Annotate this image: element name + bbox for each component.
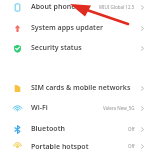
staticText: Bluetooth [31, 124, 128, 134]
button[interactable]: System apps updater [0, 20, 150, 36]
staticText: Security status [31, 43, 139, 53]
staticText: Off [128, 126, 135, 132]
button[interactable]: Bluetooth [0, 121, 150, 137]
staticText: About phone [31, 2, 99, 12]
button[interactable]: Wi-Fi [0, 100, 150, 116]
staticText: Off [128, 143, 135, 149]
staticText: SIM cards & mobile networks [31, 83, 139, 93]
button[interactable]: SIM cards & mobile networks [0, 80, 150, 96]
staticText: Portable hotspot [31, 142, 128, 150]
staticText: Wi-Fi [31, 103, 103, 113]
button[interactable]: Portable hotspot [0, 142, 150, 150]
button[interactable]: Security status [0, 40, 150, 56]
staticText: System apps updater [31, 23, 139, 33]
staticText: MIUI Global 12.5 [99, 4, 135, 10]
staticText: Valera New_5G [103, 105, 135, 111]
button[interactable]: About phone [0, 0, 150, 14]
